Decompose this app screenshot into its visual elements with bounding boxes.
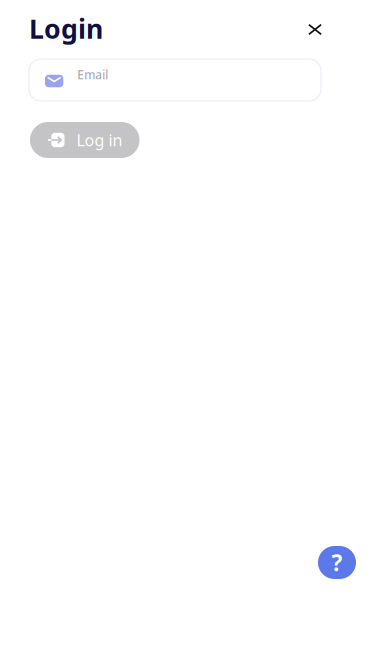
button[interactable]: Close bbox=[300, 13, 330, 43]
staticText: ? bbox=[331, 547, 342, 577]
staticText: Email bbox=[77, 66, 108, 82]
button[interactable]: Help bbox=[318, 546, 356, 579]
button[interactable]: Email bbox=[29, 59, 321, 101]
staticText: Log in bbox=[76, 129, 122, 151]
staticText: Login bbox=[29, 11, 103, 46]
button[interactable]: Log in bbox=[30, 122, 139, 158]
